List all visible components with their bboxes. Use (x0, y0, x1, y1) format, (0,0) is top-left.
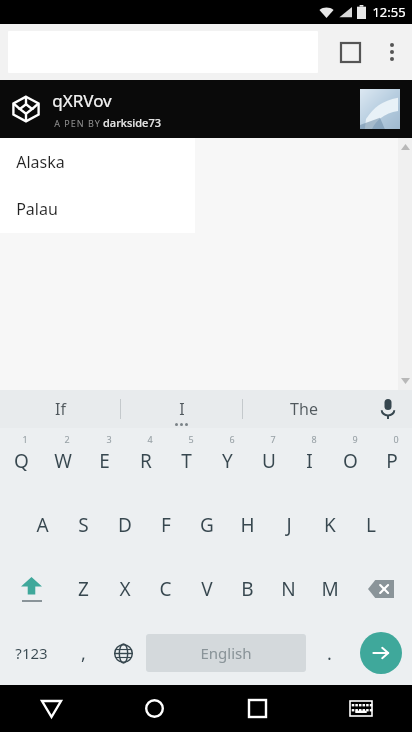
staticText: 0 (393, 433, 399, 445)
staticText: C (159, 576, 172, 602)
button[interactable]: C (145, 557, 186, 621)
button[interactable]: I (289, 428, 330, 493)
button[interactable]: J (268, 493, 309, 557)
staticText: V (201, 576, 213, 602)
staticText: O (343, 448, 358, 474)
button[interactable]: Shift, caps lock on (0, 557, 63, 621)
staticText: 12:55 (372, 3, 406, 21)
button[interactable]: English (146, 634, 306, 672)
button[interactable]: Recent apps (206, 685, 309, 732)
button[interactable]: . (309, 621, 349, 685)
button[interactable]: D (104, 493, 145, 557)
staticText: R (140, 448, 152, 474)
staticText: G (200, 512, 214, 538)
staticText: X (119, 576, 131, 602)
button[interactable]: Z (63, 557, 104, 621)
button[interactable]: Switch keyboard (309, 685, 412, 732)
staticText: If (55, 398, 66, 420)
button[interactable]: Voice input (364, 390, 412, 428)
button[interactable]: Go (360, 632, 402, 674)
staticText: ?123 (15, 643, 48, 663)
button[interactable]: More options (372, 32, 412, 72)
button[interactable]: B (227, 557, 268, 621)
button[interactable]: Palau (0, 185, 195, 232)
staticText: Palau (16, 198, 58, 220)
button[interactable]: W (42, 428, 84, 493)
staticText: M (321, 576, 339, 602)
staticText: 1 (22, 433, 28, 445)
staticText: W (54, 448, 72, 474)
button[interactable]: ?123 (0, 621, 63, 685)
staticText: Q (14, 448, 29, 474)
button[interactable]: X (104, 557, 145, 621)
button[interactable]: M (309, 557, 350, 621)
staticText: A (36, 512, 49, 538)
button[interactable]: G (186, 493, 227, 557)
staticText: L (366, 512, 376, 538)
staticText: A PEN BY (52, 117, 103, 129)
button[interactable]: A (22, 493, 63, 557)
staticText: English (200, 643, 252, 663)
staticText: D (118, 512, 132, 538)
staticText: J (286, 512, 292, 538)
staticText: Z (78, 576, 89, 602)
staticText: U (262, 448, 276, 474)
button[interactable]: If (0, 390, 120, 428)
staticText: H (240, 512, 255, 538)
button[interactable]: O (330, 428, 371, 493)
staticText: 7 (270, 433, 276, 445)
staticText: 2 (64, 433, 70, 445)
staticText: F (161, 512, 171, 538)
button[interactable]: F (145, 493, 186, 557)
button[interactable]: Tabs (328, 30, 372, 74)
button[interactable]: Y (207, 428, 248, 493)
button[interactable]: T (166, 428, 207, 493)
staticText: 6 (229, 433, 235, 445)
staticText: 4 (147, 433, 153, 445)
button[interactable]: The (243, 390, 364, 428)
button[interactable]: Alaska (0, 138, 195, 185)
staticText: The (290, 398, 318, 420)
staticText: S (78, 512, 89, 538)
button[interactable]: K (309, 493, 350, 557)
button[interactable]: H (227, 493, 268, 557)
button[interactable]: Q (0, 428, 42, 493)
staticText: P (386, 448, 398, 474)
button[interactable]: V (186, 557, 227, 621)
button[interactable]: Hide keyboard (0, 685, 103, 732)
button[interactable]: , (63, 621, 103, 685)
button[interactable]: S (63, 493, 104, 557)
button[interactable]: Home (103, 685, 206, 732)
staticText: T (181, 448, 192, 474)
staticText: Alaska (16, 151, 65, 173)
staticText: I (179, 398, 185, 420)
staticText: 3 (106, 433, 112, 445)
button[interactable]: L (350, 493, 391, 557)
button[interactable]: Change language (103, 621, 143, 685)
button[interactable]: Backspace (350, 557, 412, 621)
staticText: . (327, 641, 332, 666)
button[interactable]: E (84, 428, 125, 493)
button[interactable]: I (121, 390, 242, 428)
button[interactable]: R (125, 428, 166, 493)
staticText: 8 (311, 433, 317, 445)
staticText: Y (222, 448, 233, 474)
button[interactable]: P (371, 428, 412, 493)
staticText: K (324, 512, 336, 538)
staticText: E (99, 448, 110, 474)
staticText: darkside73 (103, 115, 161, 130)
button[interactable]: Author avatar (360, 89, 400, 129)
staticText: 9 (352, 433, 358, 445)
button[interactable]: U (248, 428, 289, 493)
staticText: N (281, 576, 296, 602)
staticText: , (81, 641, 86, 666)
button[interactable]: N (268, 557, 309, 621)
staticText: qXRVov (52, 89, 112, 112)
staticText: B (241, 576, 254, 602)
staticText: 5 (188, 433, 194, 445)
staticText: I (306, 448, 313, 474)
